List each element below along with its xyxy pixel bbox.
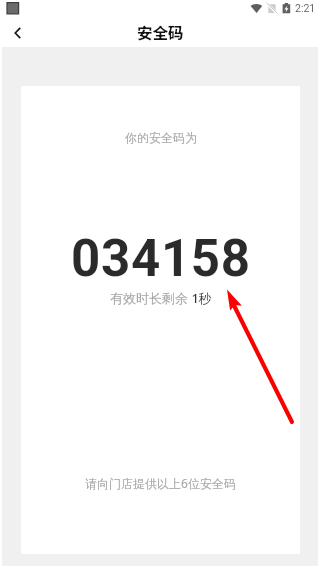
staticText: 安全码 bbox=[137, 21, 184, 43]
button[interactable]: Back bbox=[0, 18, 36, 47]
staticText: 2:21 bbox=[295, 2, 316, 14]
staticText: 034158 bbox=[71, 229, 251, 289]
staticText: 请向门店提供以上6位安全码 bbox=[85, 475, 236, 491]
staticText: 有效时长剩余 1秒 bbox=[110, 289, 212, 307]
button[interactable]: 034158 bbox=[71, 229, 251, 289]
staticText: 你的安全码为 bbox=[125, 130, 197, 145]
